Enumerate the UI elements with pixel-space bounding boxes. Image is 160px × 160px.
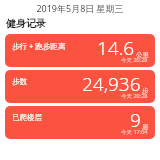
staticText: 步 <box>142 87 149 95</box>
staticText: 已爬楼层 <box>12 113 42 122</box>
staticText: 今天 20:28 <box>121 56 148 64</box>
staticText: 步行 + 跑步距离 <box>12 41 66 51</box>
staticText: 健身记录 <box>6 17 46 30</box>
staticText: 24,936 <box>82 71 141 97</box>
button[interactable]: 步行 + 跑步距离 <box>5 34 155 67</box>
staticText: 14.6 <box>97 35 135 61</box>
staticText: 9 <box>130 107 141 133</box>
staticText: 今天 17:04 <box>121 128 148 136</box>
button[interactable]: 已爬楼层 <box>5 106 155 139</box>
staticText: 层 <box>142 123 149 131</box>
staticText: 2019年5月8日 星期三 <box>0 2 160 14</box>
button[interactable]: 步数 <box>5 70 155 103</box>
staticText: 今天 20:28 <box>121 92 148 100</box>
staticText: 步数 <box>12 77 27 86</box>
staticText: 公里 <box>136 51 149 59</box>
